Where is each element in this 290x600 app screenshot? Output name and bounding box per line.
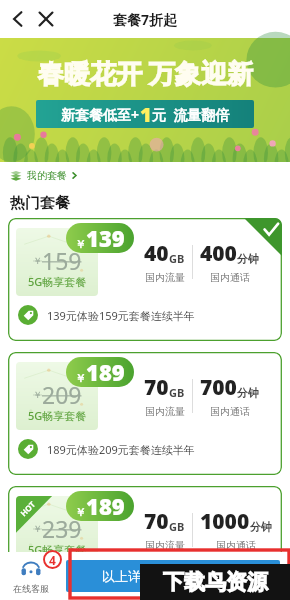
staticText: 139元体验159元套餐连续半年	[47, 308, 195, 323]
button[interactable]: ￥	[8, 486, 282, 600]
staticText: 70	[144, 507, 169, 536]
staticText: 1	[140, 101, 152, 128]
staticText: 5G畅享套餐	[28, 542, 87, 557]
staticText: 国内流量	[145, 271, 185, 284]
staticText: 分钟	[250, 520, 272, 534]
staticText: 70	[144, 373, 169, 402]
staticText: 239	[42, 513, 82, 544]
staticText: ￥	[75, 505, 86, 519]
staticText: 700	[200, 373, 237, 402]
button[interactable]: ￥	[8, 218, 282, 341]
staticText: ￥	[33, 389, 42, 400]
staticText: 以上详情已阅，立即办理	[102, 568, 245, 584]
staticText: 400	[200, 239, 237, 268]
staticText: 国内流量	[145, 539, 185, 552]
button[interactable]: Close	[32, 5, 60, 33]
staticText: 国内通话	[216, 539, 256, 552]
staticText: 春暖花开 万象迎新	[38, 55, 253, 91]
staticText: 40	[144, 239, 169, 268]
button[interactable]: 在线客服	[0, 552, 62, 600]
staticText: 新套餐低至+	[61, 105, 140, 124]
staticText: 139	[86, 223, 125, 253]
staticText: 5G畅享套餐	[28, 408, 87, 423]
staticText: 国内通话	[210, 271, 250, 284]
staticText: 在线客服	[13, 583, 49, 594]
staticText: 209	[42, 379, 82, 410]
staticText: ￥	[33, 523, 42, 534]
button[interactable]: 以上详情已阅，立即办理	[66, 560, 280, 592]
staticText: 分钟	[237, 252, 259, 266]
staticText: 国内流量	[145, 405, 185, 418]
staticText: GB	[169, 385, 185, 400]
staticText: ￥	[33, 255, 42, 266]
button[interactable]: Back	[4, 5, 32, 33]
staticText: 热门套餐	[10, 194, 70, 213]
staticText: 国内通话	[210, 405, 250, 418]
staticText: GB	[169, 251, 185, 266]
staticText: ￥	[75, 237, 86, 251]
staticText: 159	[42, 245, 82, 276]
staticText: HOT	[18, 499, 37, 518]
button[interactable]: 我的套餐	[0, 162, 290, 188]
staticText: 189元体验239元套餐连续半年	[47, 576, 195, 591]
staticText: 下载鸟资源	[163, 569, 268, 595]
staticText: 套餐7折起	[113, 10, 178, 29]
staticText: 我的套餐	[27, 169, 67, 182]
staticText: 分钟	[237, 386, 259, 400]
staticText: 5G畅享套餐	[28, 274, 87, 289]
button[interactable]: ￥	[8, 352, 282, 475]
staticText: 1000	[200, 507, 250, 536]
staticText: 4	[49, 552, 56, 568]
staticText: 189	[86, 491, 125, 521]
staticText: GB	[169, 519, 185, 534]
staticText: 元 流量翻倍	[152, 105, 230, 124]
staticText: 189元体验209元套餐连续半年	[47, 442, 195, 457]
staticText: ￥	[75, 371, 86, 385]
staticText: 189	[86, 357, 125, 387]
